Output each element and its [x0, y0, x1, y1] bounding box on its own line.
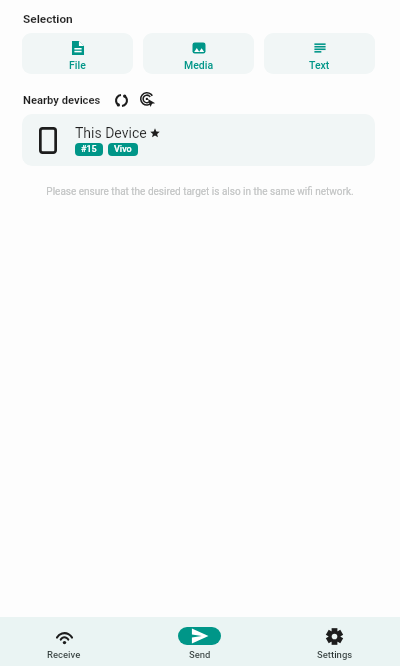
- button[interactable]: Text: [264, 33, 375, 74]
- staticText: Please ensure that the desired target is…: [0, 186, 400, 198]
- staticText: This Device: [75, 125, 147, 141]
- staticText: Text: [309, 59, 330, 71]
- staticText: Receive: [47, 649, 81, 660]
- staticText: Vivo: [114, 144, 132, 155]
- staticText: Send: [189, 649, 211, 660]
- staticText: Selection: [23, 12, 73, 26]
- button[interactable]: Refresh: [111, 90, 131, 110]
- staticText: Settings: [317, 649, 353, 660]
- staticText: Media: [184, 59, 214, 71]
- button[interactable]: Send: [134, 619, 267, 664]
- staticText: #15: [81, 144, 97, 155]
- staticText: File: [69, 59, 86, 71]
- button[interactable]: File: [22, 33, 133, 74]
- button[interactable]: Media: [143, 33, 254, 74]
- button[interactable]: Settings: [267, 619, 400, 664]
- button[interactable]: This Device: [22, 114, 375, 166]
- staticText: Nearby devices: [23, 94, 101, 107]
- button[interactable]: Scan for devices: [138, 90, 158, 110]
- button[interactable]: Receive: [0, 619, 134, 664]
